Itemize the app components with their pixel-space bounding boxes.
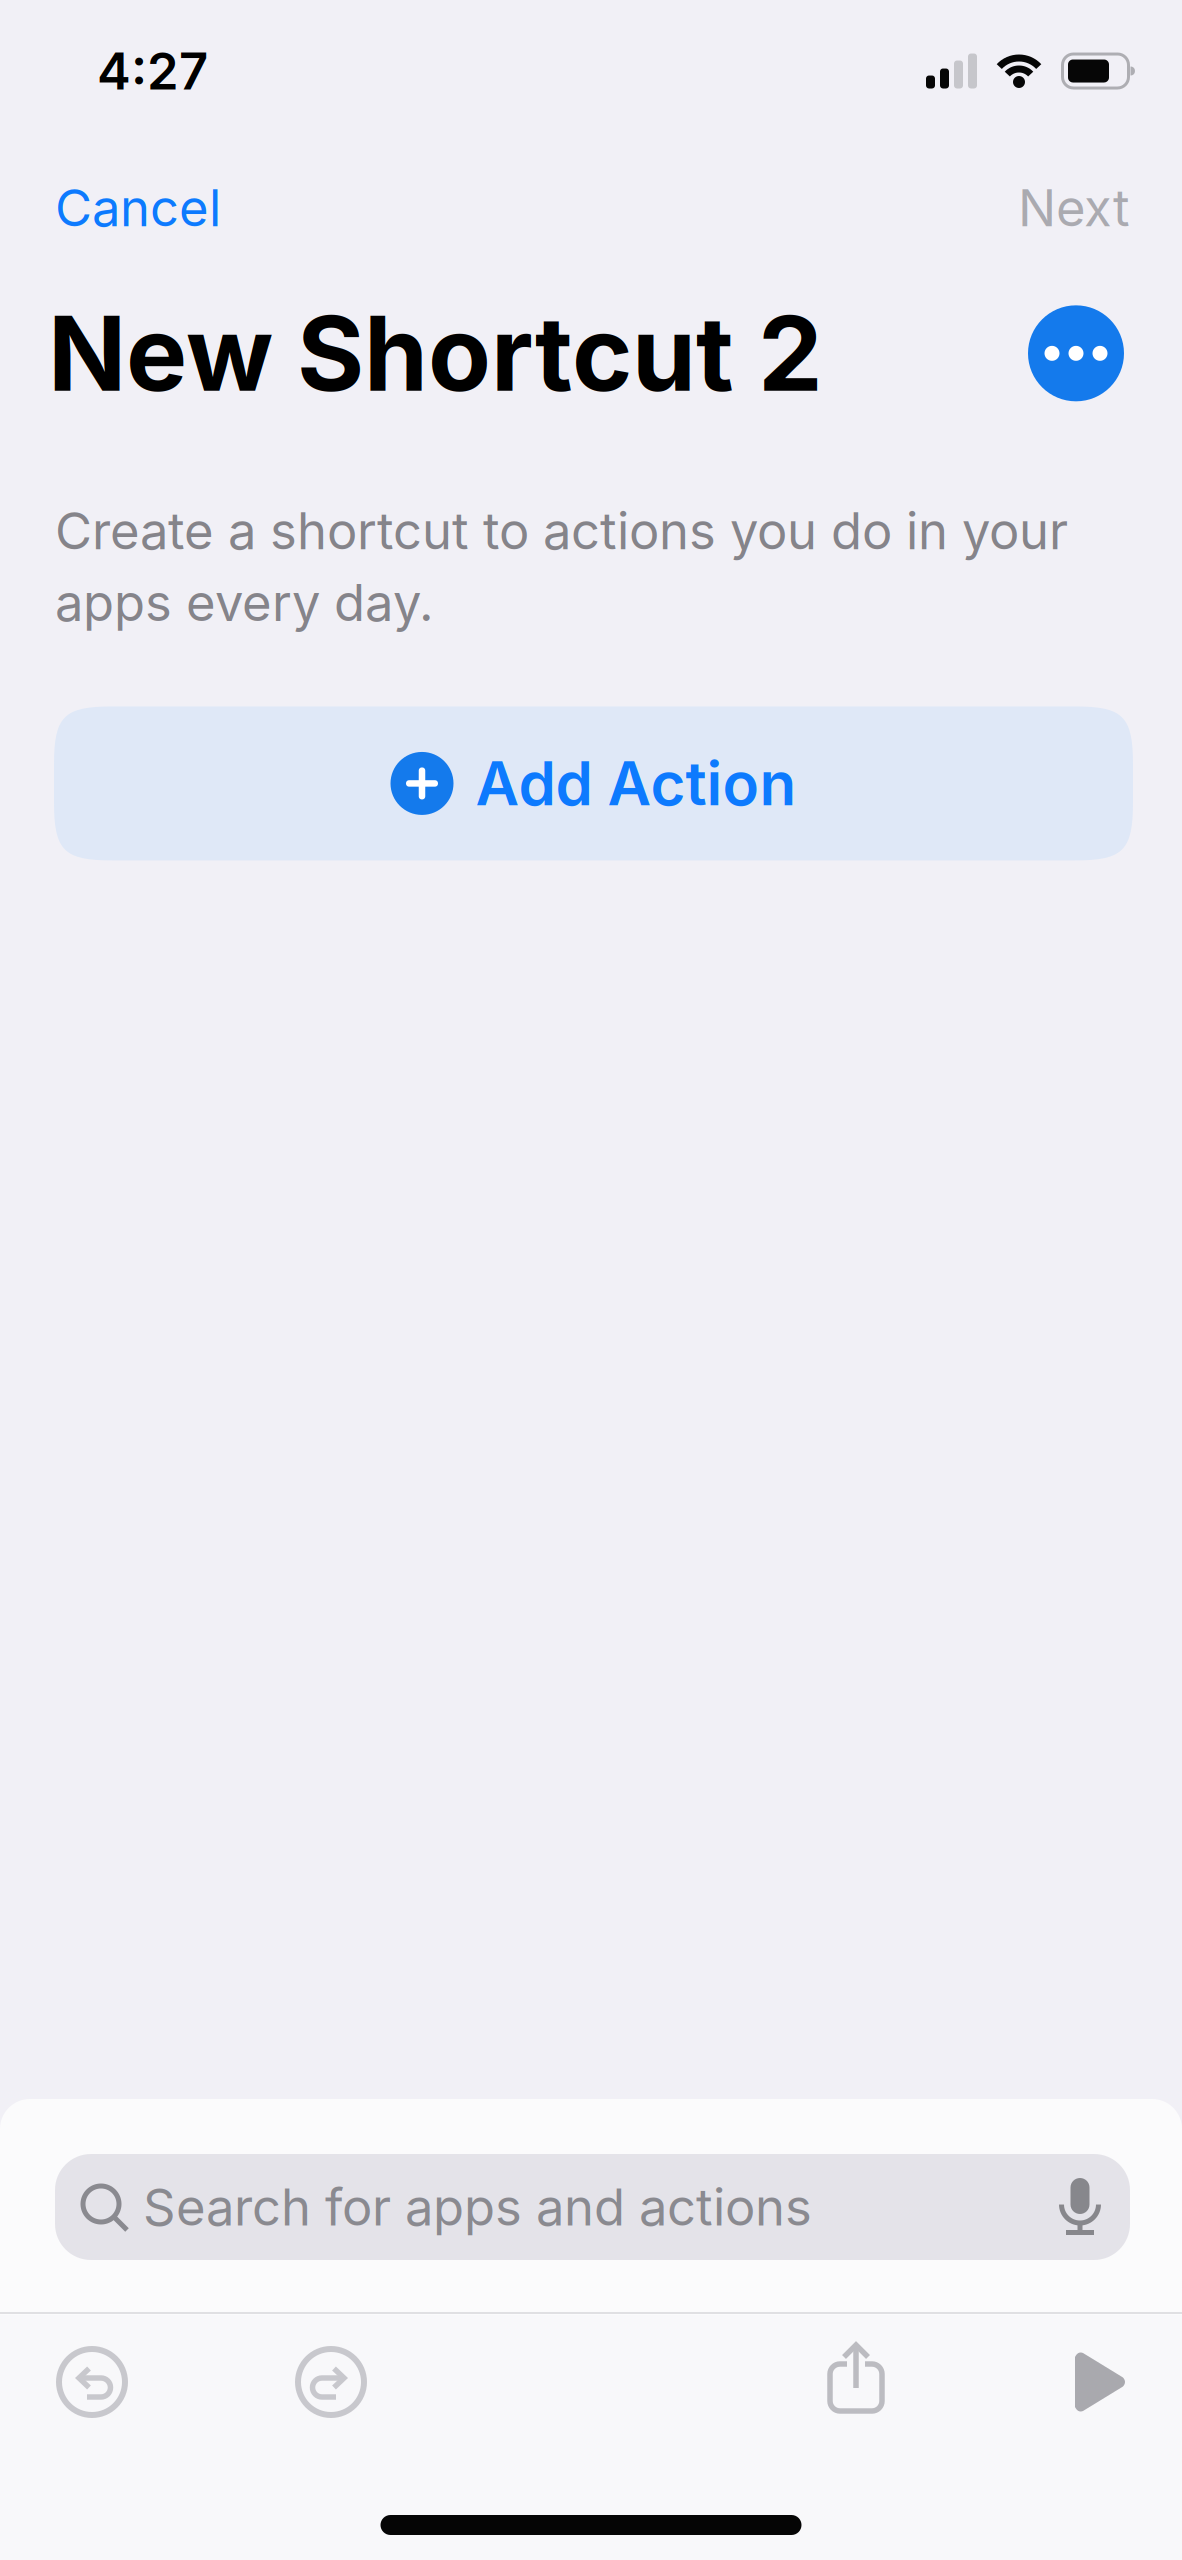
button[interactable]: Next [1018,178,1130,238]
button[interactable]: Redo [295,2346,367,2418]
staticText: 4:27 [97,41,208,101]
staticText: Create a shortcut to actions you do in y… [55,501,1068,561]
staticText: Add Action [475,748,796,819]
button[interactable]: Add Action [54,706,1133,860]
button[interactable]: More [1028,305,1124,401]
button[interactable]: Cancel [55,178,221,238]
staticText: Cancel [55,178,221,238]
staticText: apps every day. [55,573,434,632]
button[interactable]: Undo [56,2346,128,2418]
button[interactable]: Search for apps and actions [55,2154,1130,2260]
button[interactable]: Run shortcut [1075,2352,1127,2412]
staticText: Next [1018,178,1130,238]
staticText: New Shortcut 2 [48,293,823,414]
button[interactable]: Share [827,2346,885,2418]
staticText: Search for apps and actions [143,2177,812,2237]
